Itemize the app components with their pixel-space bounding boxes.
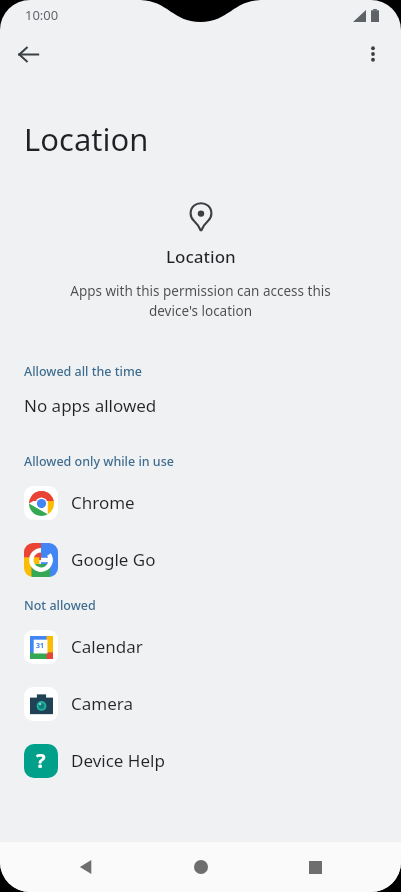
staticText: Apps with this permission can access thi…	[62, 282, 339, 320]
button[interactable]: 31	[0, 618, 401, 675]
staticText: Camera	[71, 692, 133, 715]
button[interactable]: More options	[353, 34, 393, 74]
staticText: ?	[36, 747, 46, 774]
staticText: Allowed only while in use	[24, 453, 174, 470]
staticText: Calendar	[71, 635, 143, 658]
staticText: Chrome	[71, 491, 135, 514]
staticText: Device Help	[71, 749, 165, 772]
staticText: Location	[166, 245, 236, 268]
button[interactable]: Chrome	[0, 474, 401, 531]
button[interactable]: Recent apps	[287, 842, 343, 892]
staticText: 10:00	[25, 6, 59, 24]
button[interactable]: ?	[0, 732, 401, 789]
button[interactable]: Google Go	[0, 531, 401, 588]
staticText: Google Go	[71, 548, 156, 571]
staticText: No apps allowed	[24, 394, 157, 417]
staticText: 31	[36, 641, 45, 651]
staticText: Not allowed	[24, 597, 96, 614]
staticText: Allowed all the time	[24, 363, 142, 380]
button[interactable]: Back	[58, 842, 114, 892]
staticText: Location	[24, 118, 149, 160]
button[interactable]: Home	[173, 842, 229, 892]
button[interactable]: Camera	[0, 675, 401, 732]
button[interactable]: Back	[8, 34, 48, 74]
